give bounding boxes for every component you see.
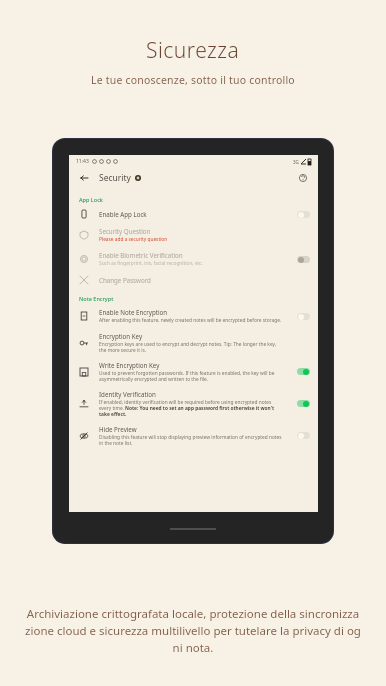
button[interactable]: Change Password bbox=[69, 271, 318, 289]
staticText: Hide Preview bbox=[99, 425, 137, 433]
button[interactable]: Toggle bbox=[297, 211, 310, 218]
staticText: Encryption keys are used to encrypt and … bbox=[99, 341, 282, 353]
staticText: Enable Biometric Verification bbox=[99, 251, 183, 259]
staticText: Enable Note Encryption bbox=[99, 308, 168, 316]
staticText: Archiviazione crittografata locale, prot… bbox=[25, 606, 361, 656]
staticText: Le tue conoscenze, sotto il tuo controll… bbox=[91, 73, 295, 87]
staticText: Such as fingerprint, iris, facial recogn… bbox=[99, 260, 203, 267]
staticText: Please add a security question bbox=[99, 236, 168, 243]
button[interactable]: Hide Preview bbox=[69, 421, 318, 450]
button[interactable]: Toggle bbox=[297, 400, 310, 407]
staticText: Disabling this feature will stop display… bbox=[99, 434, 282, 446]
button[interactable]: Security Question bbox=[69, 223, 318, 247]
staticText: App Lock bbox=[79, 196, 103, 203]
button[interactable]: Enable Biometric Verification bbox=[69, 247, 318, 271]
button[interactable]: Encryption Key bbox=[69, 328, 318, 357]
button[interactable]: Enable App Lock bbox=[69, 205, 318, 223]
button[interactable]: Toggle bbox=[297, 368, 310, 375]
staticText: 3G bbox=[293, 159, 299, 165]
staticText: Enable App Lock bbox=[99, 210, 147, 218]
button[interactable]: Back bbox=[77, 171, 91, 185]
staticText: After enabling this feature, newly creat… bbox=[99, 317, 282, 324]
button[interactable]: Identity Verification bbox=[69, 386, 318, 421]
button[interactable]: Write Encryption Key bbox=[69, 357, 318, 386]
staticText: Identity Verification bbox=[99, 390, 156, 398]
button[interactable]: Toggle bbox=[297, 432, 310, 439]
staticText: Change Password bbox=[99, 276, 151, 284]
button[interactable]: Toggle bbox=[297, 256, 310, 263]
button[interactable]: Help bbox=[296, 171, 310, 185]
staticText: 11:43 bbox=[76, 158, 89, 165]
staticText: Security Question bbox=[99, 227, 151, 235]
button[interactable]: Toggle bbox=[297, 313, 310, 320]
button[interactable]: Enable Note Encryption bbox=[69, 304, 318, 328]
staticText: Encryption Key bbox=[99, 332, 143, 340]
staticText: Security bbox=[99, 172, 131, 184]
staticText: Note Encrypt bbox=[79, 295, 114, 302]
staticText: Write Encryption Key bbox=[99, 361, 160, 369]
staticText: Used to prevent forgotten passwords. If … bbox=[99, 370, 282, 382]
staticText: Sicurezza bbox=[146, 36, 240, 65]
staticText: If enabled, identity verification will b… bbox=[99, 399, 282, 417]
